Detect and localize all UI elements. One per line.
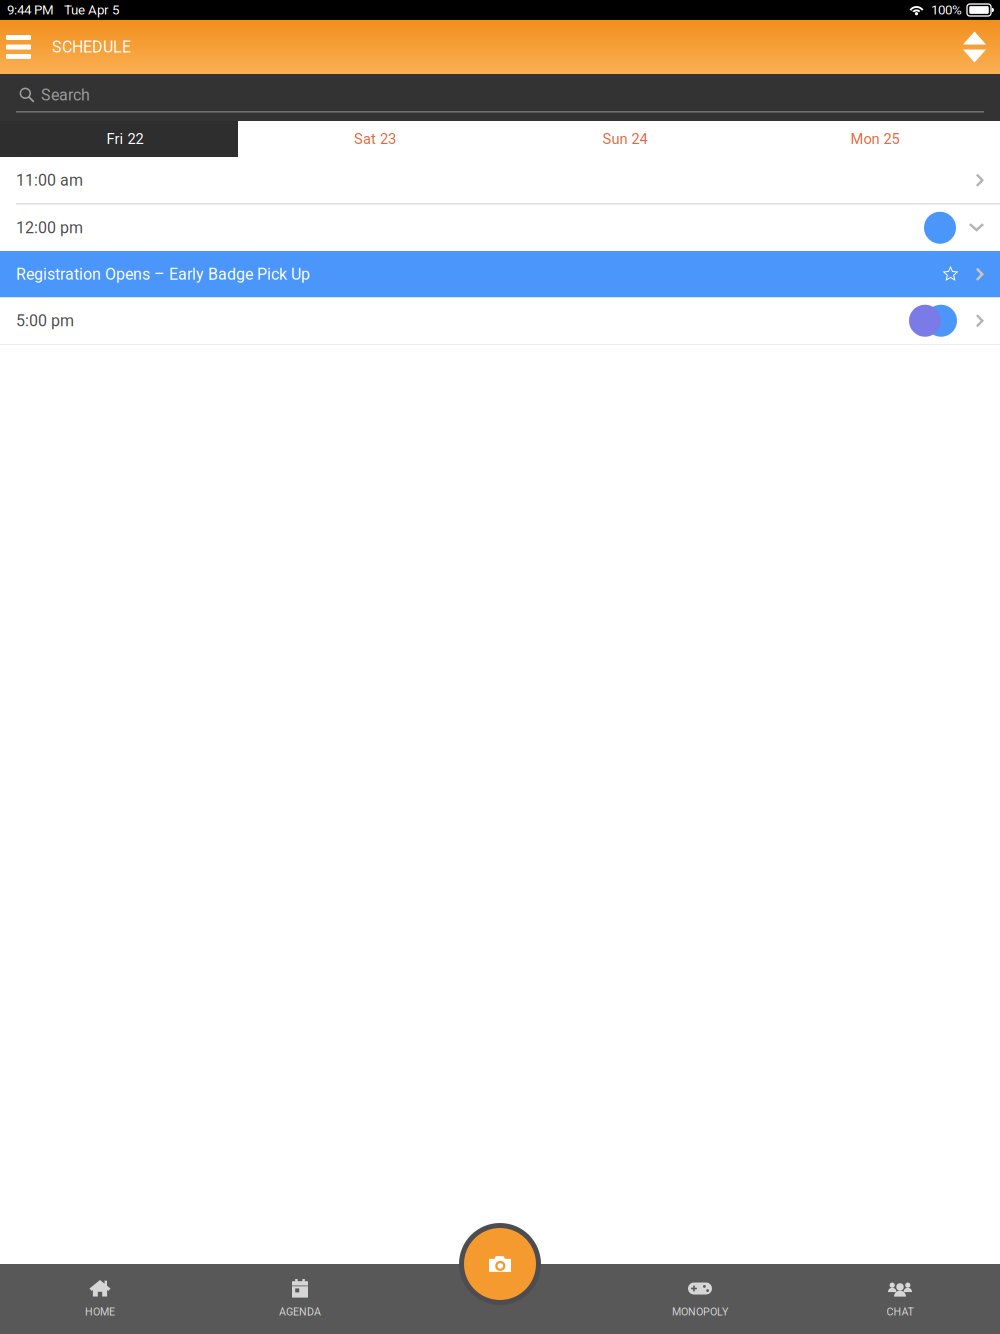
button[interactable]: HOME	[0, 1264, 200, 1334]
staticText: 12:00 pm	[16, 218, 83, 237]
button[interactable]: Menu	[0, 20, 37, 74]
button[interactable]: Registration Opens – Early Badge Pick Up	[0, 251, 1000, 297]
staticText: 9:44 PM	[7, 2, 54, 18]
staticText: Search	[41, 86, 90, 104]
button[interactable]: 11:00 am	[0, 157, 1000, 203]
button[interactable]: MONOPOLY	[600, 1264, 800, 1334]
staticText: Sat 23	[354, 130, 396, 148]
staticText: Tue Apr 5	[64, 2, 119, 18]
button[interactable]: AGENDA	[200, 1264, 400, 1334]
button[interactable]: 5:00 pm	[0, 297, 1000, 344]
staticText: Sun 24	[602, 130, 647, 148]
button[interactable]: 12:00 pm	[0, 204, 1000, 251]
button[interactable]: Mon 25	[750, 121, 1000, 157]
button[interactable]: Sat 23	[250, 121, 500, 157]
staticText: Fri 22	[106, 130, 143, 148]
staticText: 5:00 pm	[16, 311, 74, 330]
button[interactable]: CHAT	[800, 1264, 1000, 1334]
button[interactable]: Sun 24	[500, 121, 750, 157]
staticText: AGENDA	[279, 1305, 321, 1318]
staticText: 11:00 am	[16, 171, 83, 190]
button[interactable]: Take photo	[459, 1223, 541, 1305]
staticText: HOME	[85, 1305, 115, 1318]
staticText: CHAT	[886, 1305, 913, 1318]
staticText: Registration Opens – Early Badge Pick Up	[16, 265, 310, 284]
staticText: SCHEDULE	[52, 38, 131, 56]
staticText: MONOPOLY	[672, 1305, 728, 1318]
button[interactable]: Sort order	[955, 20, 994, 74]
staticText: 100%	[931, 2, 962, 18]
staticText: Mon 25	[850, 130, 899, 148]
button[interactable]: Fri 22	[0, 121, 250, 157]
